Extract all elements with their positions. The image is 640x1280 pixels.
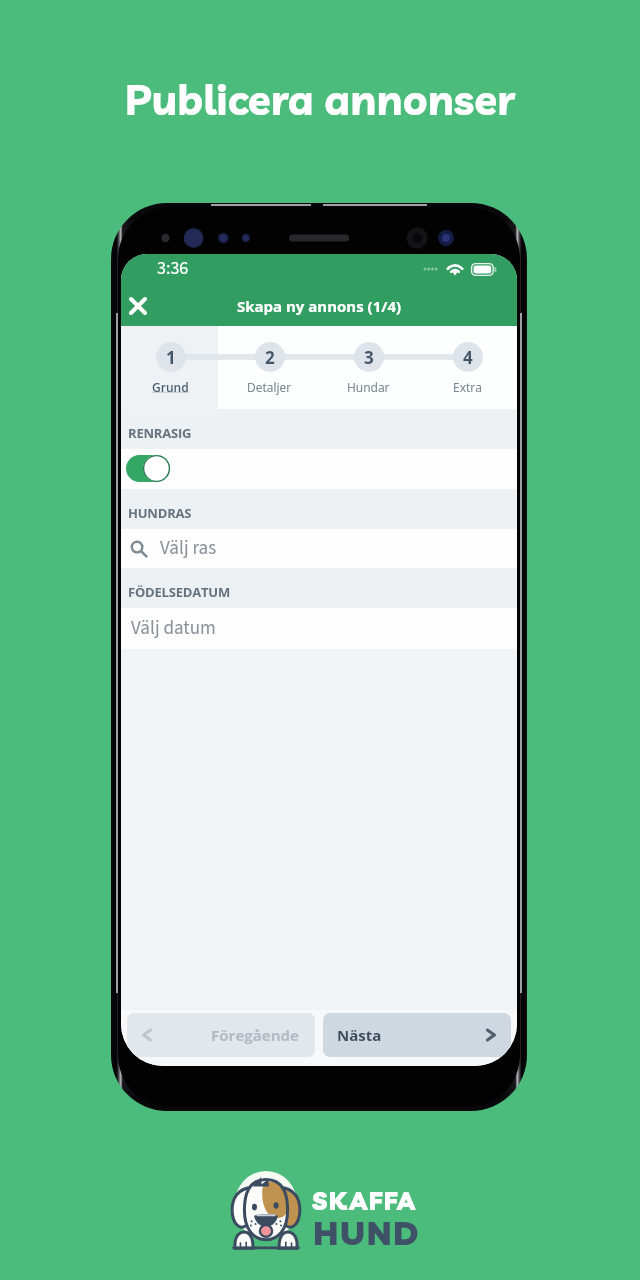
staticText: 2 [265, 346, 275, 369]
button[interactable]: Välj ras [121, 529, 517, 568]
staticText: Föregående [181, 1025, 315, 1045]
staticText: Publicera annonser [0, 73, 640, 126]
button[interactable]: Renrasig [125, 454, 171, 483]
button[interactable]: Föregående [127, 1013, 315, 1057]
staticText: 3 [364, 346, 374, 369]
staticText: Skapa ny annons (1/4) [121, 296, 517, 316]
button[interactable]: 2 [220, 326, 319, 409]
staticText: Välj datum [131, 615, 216, 642]
staticText: 1 [166, 346, 176, 369]
button[interactable]: 1 [121, 326, 220, 409]
button[interactable]: 4 [418, 326, 517, 409]
staticText: Nästa [337, 1025, 382, 1045]
button[interactable]: Stäng [122, 284, 154, 327]
staticText: 4 [463, 346, 473, 369]
staticText: FÖDELSEDATUM [128, 583, 230, 601]
staticText: Extra [453, 379, 482, 395]
staticText: HUNDRAS [128, 504, 192, 522]
button[interactable]: Välj datum [121, 608, 517, 649]
staticText: 3:36 [157, 256, 189, 282]
button[interactable]: 3 [319, 326, 418, 409]
staticText: HUND [313, 1212, 420, 1253]
staticText: Detaljer [247, 379, 292, 395]
staticText: RENRASIG [128, 424, 192, 442]
staticText: Grund [152, 379, 189, 395]
staticText: Välj ras [160, 535, 217, 562]
staticText: Hundar [347, 379, 390, 395]
staticText: SKAFFA [312, 1185, 417, 1216]
button[interactable]: Nästa [323, 1013, 511, 1057]
